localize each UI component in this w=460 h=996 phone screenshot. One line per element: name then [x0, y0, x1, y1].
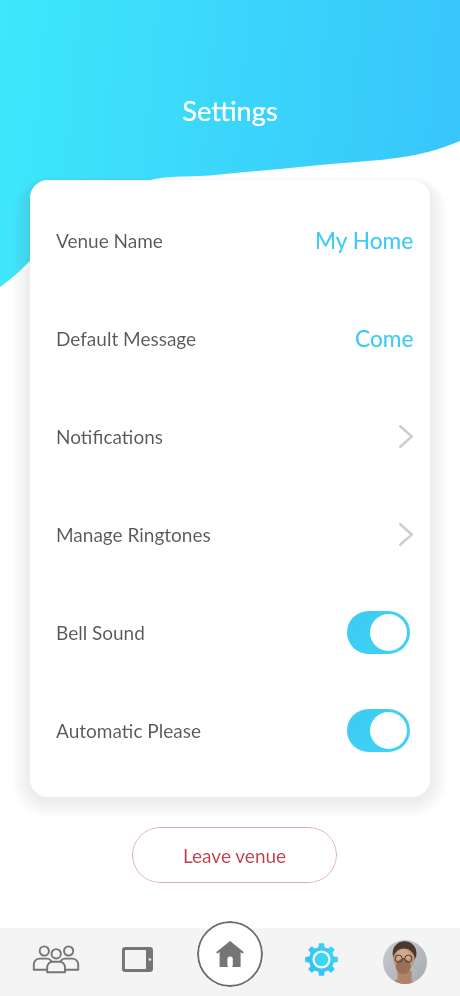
button[interactable]: Leave venue: [132, 827, 337, 883]
button[interactable]: People: [10, 925, 102, 993]
button[interactable]: Venue Name: [30, 180, 430, 270]
button[interactable]: Devices: [102, 925, 172, 993]
button[interactable]: Automatic Please: [30, 662, 430, 760]
staticText: Venue Name: [56, 229, 163, 252]
button[interactable]: Bell Sound: [30, 564, 430, 662]
staticText: Settings: [0, 94, 460, 127]
staticText: Notifications: [56, 425, 164, 448]
button[interactable]: Toggle: [347, 611, 410, 654]
button[interactable]: Home: [197, 921, 263, 987]
staticText: Automatic Please: [56, 719, 201, 742]
button[interactable]: Notifications: [30, 368, 430, 466]
button[interactable]: Default Message: [30, 270, 430, 368]
button[interactable]: Toggle: [347, 709, 410, 752]
staticText: Default Message: [56, 327, 197, 350]
button[interactable]: Settings: [276, 925, 367, 993]
staticText: Bell Sound: [56, 621, 145, 644]
button[interactable]: Profile: [367, 928, 442, 996]
staticText: My Home: [315, 227, 414, 254]
staticText: Come: [355, 325, 414, 352]
staticText: Leave venue: [183, 844, 287, 867]
button[interactable]: Manage Ringtones: [30, 466, 430, 564]
staticText: Manage Ringtones: [56, 523, 211, 546]
button[interactable]: Profile: [383, 940, 427, 984]
